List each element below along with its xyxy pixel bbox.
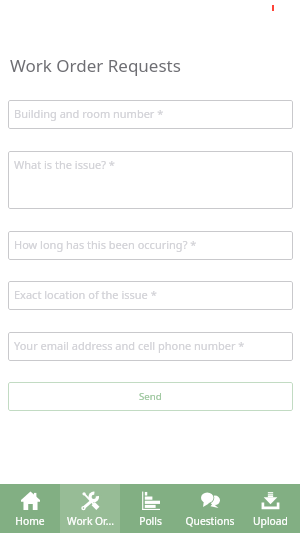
staticText: Exact location of the issue * <box>14 287 157 302</box>
button[interactable]: Exact location of the issue * <box>8 281 293 310</box>
staticText: How long has this been occuring? * <box>14 237 197 252</box>
staticText: Your email address and cell phone number… <box>14 338 245 353</box>
staticText: Work Or... <box>67 514 114 528</box>
button[interactable]: Send <box>8 382 293 411</box>
staticText: Work Order Requests <box>10 54 181 77</box>
staticText: Building and room number * <box>14 106 164 121</box>
button[interactable]: Your email address and cell phone number… <box>8 332 293 361</box>
button[interactable]: Home <box>0 484 60 533</box>
button[interactable]: Questions <box>180 484 240 533</box>
button[interactable]: What is the issue? * <box>8 151 293 209</box>
staticText: Questions <box>185 514 235 528</box>
button[interactable]: Upload <box>240 484 300 533</box>
button[interactable]: Building and room number * <box>8 100 293 129</box>
staticText: Upload <box>253 514 288 528</box>
staticText: Send <box>139 390 162 403</box>
button[interactable]: Polls <box>120 484 180 533</box>
staticText: Polls <box>139 514 162 528</box>
staticText: Home <box>15 514 45 528</box>
button[interactable]: How long has this been occuring? * <box>8 231 293 260</box>
staticText: What is the issue? * <box>14 157 115 172</box>
button[interactable]: Work Or... <box>60 484 120 533</box>
